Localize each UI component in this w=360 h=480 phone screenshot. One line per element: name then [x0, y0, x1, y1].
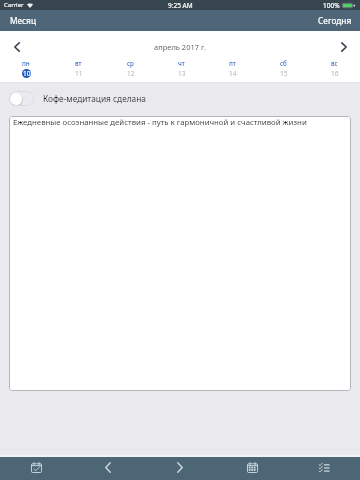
staticText: пн	[22, 59, 30, 67]
staticText: Ежедневные осознанные действия - путь к …	[13, 117, 307, 128]
button[interactable]: чт	[156, 57, 207, 82]
staticText: 9:25 AM	[168, 1, 193, 10]
button[interactable]: Месяц	[0, 10, 44, 31]
button[interactable]: Previous month	[0, 34, 33, 60]
button[interactable]: ср	[104, 57, 156, 82]
staticText: чт	[178, 59, 185, 67]
staticText: 11	[75, 69, 83, 78]
staticText: 14	[229, 69, 237, 78]
staticText: 16	[331, 69, 339, 78]
button[interactable]: сб	[258, 57, 309, 82]
staticText: 12	[127, 69, 135, 78]
button[interactable]: Next day	[144, 457, 216, 480]
staticText: Carrier	[4, 1, 24, 9]
button[interactable]: вс	[309, 57, 360, 82]
button[interactable]: вт	[52, 57, 104, 82]
button[interactable]: Сегодня	[310, 10, 360, 31]
staticText: 13	[178, 69, 186, 78]
staticText: Кофе-медитация сделана	[43, 93, 146, 104]
staticText: вс	[331, 59, 338, 67]
button[interactable]: Month view	[216, 457, 288, 480]
staticText: Сегодня	[318, 15, 352, 26]
staticText: ср	[127, 59, 134, 67]
staticText: апрель 2017 г.	[154, 42, 206, 52]
staticText: 10	[23, 69, 31, 78]
button[interactable]: пт	[207, 57, 258, 82]
staticText: 100%	[323, 1, 340, 10]
button[interactable]: Toggle done	[9, 91, 34, 106]
staticText: пт	[229, 59, 236, 67]
button[interactable]: пн	[0, 57, 52, 82]
button[interactable]: Ежедневные осознанные действия - путь к …	[9, 116, 351, 391]
staticText: сб	[280, 59, 287, 67]
staticText: вт	[75, 59, 82, 67]
button[interactable]: Previous day	[72, 457, 144, 480]
button[interactable]: Next month	[327, 34, 360, 60]
button[interactable]: Tasks for day	[0, 457, 72, 480]
staticText: 15	[280, 69, 288, 78]
staticText: Месяц	[10, 15, 36, 26]
button[interactable]: Checklist	[288, 457, 360, 480]
